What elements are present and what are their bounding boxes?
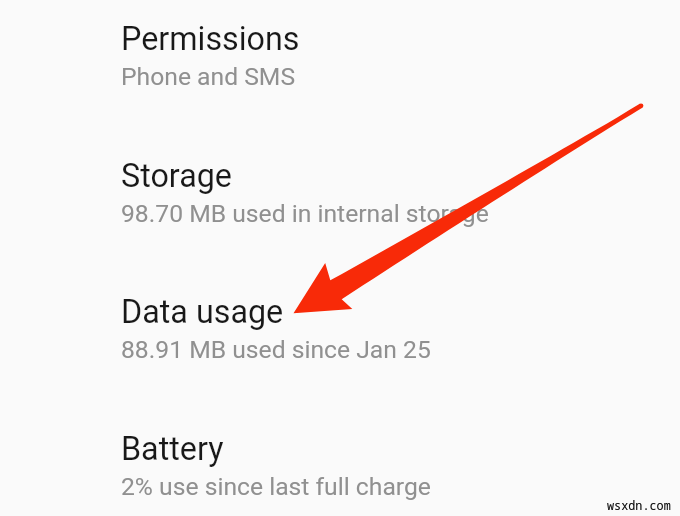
staticText: wsxdn.com — [607, 497, 671, 513]
staticText: 2% use since last full charge — [121, 472, 431, 501]
staticText: Data usage — [121, 293, 284, 331]
staticText: Storage — [121, 157, 232, 195]
button[interactable]: Permissions — [0, 0, 680, 124]
staticText: Phone and SMS — [121, 62, 296, 91]
staticText: Battery — [121, 430, 224, 468]
staticText: 98.70 MB used in internal storage — [121, 199, 489, 228]
button[interactable]: Battery — [0, 397, 680, 516]
staticText: 88.91 MB used since Jan 25 — [121, 335, 431, 364]
staticText: Permissions — [121, 20, 300, 58]
button[interactable]: Data usage — [0, 260, 680, 397]
staticText: wsxdn.com — [607, 497, 671, 513]
button[interactable]: Storage — [0, 124, 680, 261]
